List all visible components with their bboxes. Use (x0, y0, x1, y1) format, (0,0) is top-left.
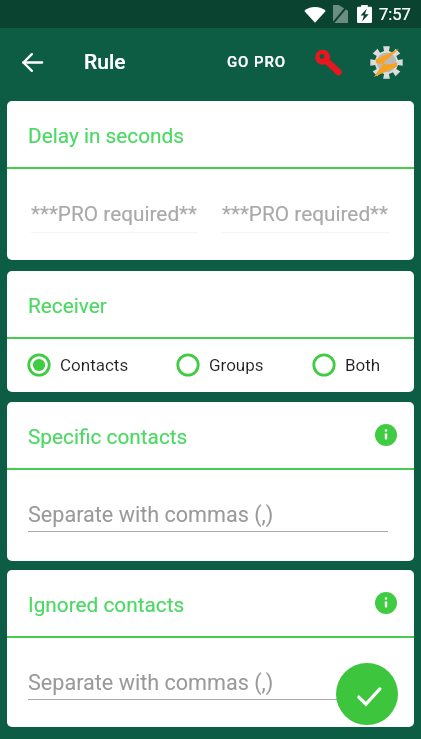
button[interactable]: Groups (176, 342, 270, 388)
staticText: Receiver (28, 294, 107, 318)
staticText: Separate with commas (,) (28, 670, 274, 695)
staticText: ***PRO required** (31, 202, 198, 226)
button[interactable]: Back (10, 40, 54, 84)
staticText: Delay in seconds (28, 124, 185, 148)
button[interactable]: Both (312, 342, 387, 388)
staticText: 7:57 (379, 5, 411, 24)
button[interactable]: Info (371, 420, 401, 450)
button[interactable]: Info (371, 588, 401, 618)
staticText: Separate with commas (,) (28, 502, 274, 527)
button[interactable]: Save (336, 663, 398, 725)
button[interactable]: GO PRO (213, 41, 301, 83)
staticText: Groups (209, 355, 264, 375)
staticText: GO PRO (227, 53, 287, 71)
staticText: Both (345, 355, 381, 375)
staticText: Contacts (60, 355, 129, 375)
button[interactable]: Settings (363, 39, 409, 85)
button[interactable]: Contacts (27, 342, 135, 388)
staticText: Ignored contacts (28, 593, 185, 617)
staticText: Rule (84, 50, 126, 75)
button[interactable]: Unlock pro (306, 40, 350, 84)
staticText: ***PRO required** (222, 202, 389, 226)
staticText: Specific contacts (28, 425, 188, 449)
